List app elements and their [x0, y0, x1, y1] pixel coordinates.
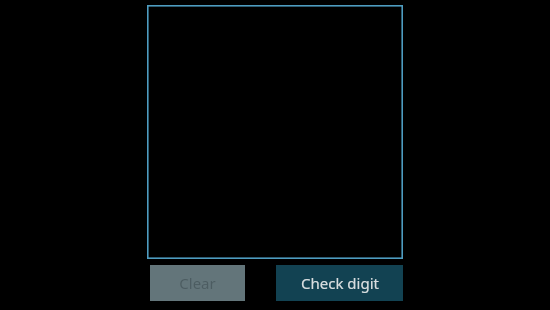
button[interactable]: Clear: [150, 265, 245, 301]
button[interactable]: [147, 5, 403, 259]
staticText: Clear: [179, 273, 216, 293]
button[interactable]: Check digit: [276, 265, 403, 301]
staticText: Check digit: [301, 273, 379, 293]
